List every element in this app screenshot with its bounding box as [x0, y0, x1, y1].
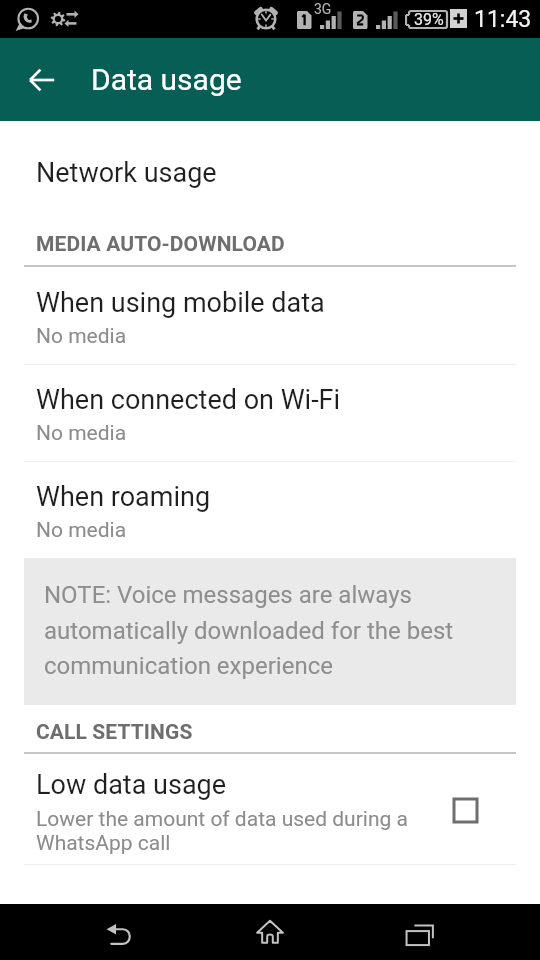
staticText: When connected on Wi-Fi: [36, 384, 341, 416]
staticText: No media: [36, 324, 127, 349]
button[interactable]: Back: [92, 906, 148, 960]
staticText: Data usage: [91, 62, 242, 97]
staticText: 11:43: [474, 6, 532, 33]
staticText: Low data usage: [36, 769, 227, 801]
staticText: 39%: [414, 10, 444, 29]
staticText: CALL SETTINGS: [36, 720, 193, 745]
staticText: When roaming: [36, 481, 211, 513]
button[interactable]: When roaming: [0, 461, 540, 558]
staticText: Lower the amount of data used during a W…: [36, 807, 428, 855]
button[interactable]: Low data usage: [0, 754, 540, 864]
staticText: Network usage: [36, 157, 217, 189]
staticText: NOTE: Voice messages are always automati…: [44, 581, 454, 680]
button[interactable]: Recent apps: [392, 907, 448, 960]
staticText: No media: [36, 518, 127, 543]
button[interactable]: Network usage: [0, 121, 540, 216]
button[interactable]: Navigate up: [18, 56, 66, 104]
staticText: 3G: [314, 1, 332, 17]
staticText: MEDIA AUTO-DOWNLOAD: [36, 232, 285, 257]
button[interactable]: When connected on Wi-Fi: [0, 364, 540, 461]
staticText: No media: [36, 421, 127, 446]
button[interactable]: Low data usage checkbox: [437, 782, 493, 838]
button[interactable]: Home: [242, 904, 298, 960]
button[interactable]: When using mobile data: [0, 267, 540, 364]
staticText: When using mobile data: [36, 287, 325, 319]
